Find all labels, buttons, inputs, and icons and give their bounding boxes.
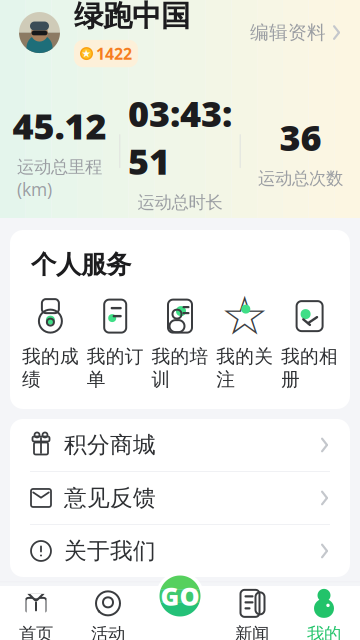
- staticText: 已获得33个: [255, 266, 321, 307]
- button[interactable]: 编辑资料: [250, 21, 341, 44]
- staticText: ★: [81, 47, 91, 60]
- staticText: 编辑资料: [250, 21, 326, 44]
- button[interactable]: 我的订单: [83, 294, 148, 393]
- staticText: 我的: [307, 623, 341, 640]
- staticText: 1422: [96, 43, 132, 64]
- staticText: 45.12: [13, 102, 107, 149]
- staticText: ☆: [221, 286, 269, 346]
- staticText: 我的相册: [281, 345, 338, 391]
- staticText: 活动: [91, 623, 125, 640]
- button[interactable]: 首页: [0, 582, 72, 640]
- button[interactable]: 活动: [72, 582, 144, 640]
- staticText: 新闻: [235, 623, 269, 640]
- staticText: 运动总时长: [137, 192, 222, 213]
- staticText: 我的关注: [216, 345, 273, 391]
- button[interactable]: GO: [156, 572, 204, 620]
- staticText: 个人服务: [31, 249, 131, 280]
- staticText: 首页: [19, 623, 53, 640]
- button[interactable]: ☆: [212, 294, 277, 393]
- staticText: 运动总里程(km): [17, 156, 102, 201]
- staticText: 关于我们: [64, 537, 156, 565]
- staticText: 36: [279, 113, 321, 161]
- button[interactable]: 新闻: [216, 582, 288, 640]
- staticText: 我的成绩: [22, 345, 79, 391]
- button[interactable]: 我的相册: [277, 294, 342, 393]
- staticText: 03:43:51: [128, 89, 232, 185]
- button[interactable]: 关于我们: [10, 525, 350, 577]
- button[interactable]: 意见反馈: [10, 472, 350, 524]
- staticText: 我的证书: [255, 207, 324, 263]
- button[interactable]: 我的: [288, 582, 360, 640]
- button[interactable]: 我的培训: [148, 294, 212, 393]
- staticText: 已参加23场: [80, 266, 146, 307]
- staticText: 意见反馈: [64, 484, 156, 512]
- staticText: GO: [160, 579, 199, 613]
- button[interactable]: 我的成绩: [18, 294, 83, 393]
- button[interactable]: 积分商城: [10, 419, 350, 471]
- staticText: 我的培训: [151, 345, 208, 391]
- staticText: 我的订单: [87, 345, 144, 391]
- staticText: 积分商城: [64, 431, 156, 459]
- staticText: 我的报名: [80, 207, 149, 263]
- button[interactable]: 我的报名: [10, 231, 174, 283]
- staticText: 绿跑中国: [74, 0, 190, 34]
- staticText: 运动总次数: [258, 168, 343, 189]
